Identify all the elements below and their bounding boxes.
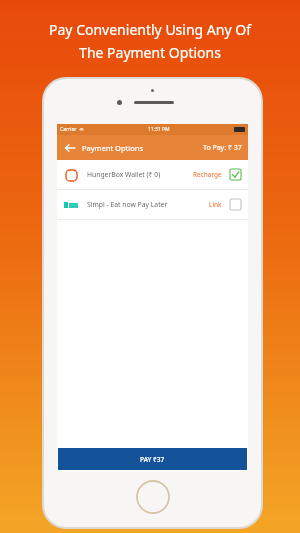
staticText: Pay Conveniently Using Any Of bbox=[49, 20, 251, 39]
staticText: Link bbox=[209, 200, 222, 209]
staticText: Payment Options bbox=[82, 143, 143, 153]
staticText: Recharge bbox=[193, 170, 222, 179]
staticText: HungerBox Wallet (₹ 0) bbox=[87, 170, 161, 179]
button[interactable]: PAY ₹37 bbox=[58, 448, 247, 470]
button[interactable]: Select bbox=[230, 199, 241, 210]
staticText: 11:31 PM bbox=[148, 126, 170, 133]
button[interactable]: Simpl - Eat now Pay Later bbox=[57, 190, 248, 219]
staticText: Carrier bbox=[60, 126, 77, 133]
button[interactable]: HungerBox Wallet (₹ 0) bbox=[57, 160, 248, 189]
staticText: The Payment Options bbox=[79, 43, 221, 62]
button[interactable]: Back bbox=[63, 141, 77, 155]
button[interactable]: Link bbox=[207, 198, 224, 211]
staticText: Simpl - Eat now Pay Later bbox=[87, 200, 168, 209]
staticText: PAY ₹37 bbox=[140, 455, 165, 464]
staticText: To Pay: ₹ 37 bbox=[203, 143, 242, 153]
button[interactable]: Selected bbox=[230, 169, 241, 180]
button[interactable]: Recharge bbox=[191, 168, 224, 181]
